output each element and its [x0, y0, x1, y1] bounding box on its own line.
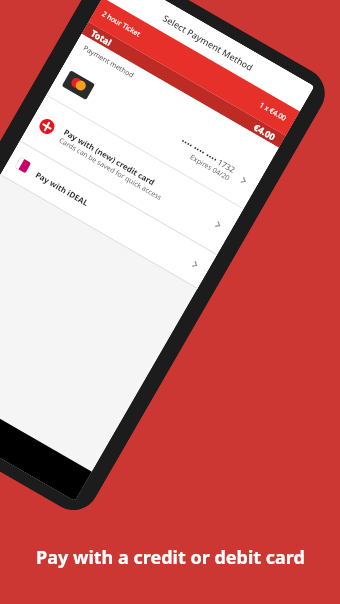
other: iDEAL — [15, 157, 31, 173]
other: Add card — [37, 116, 57, 137]
staticText: Select Payment Method — [161, 12, 256, 73]
staticText: Pay with (new) credit card — [62, 126, 157, 188]
staticText: Expires 04/20 — [188, 152, 232, 184]
staticText: €4.00 — [252, 121, 278, 143]
button[interactable]: iDEAL — [0, 141, 217, 288]
staticText: •••• •••• •••• 1732 — [179, 135, 237, 175]
button[interactable]: Select Payment Method — [102, 0, 314, 111]
button[interactable]: Add card — [20, 95, 243, 254]
staticText: Total — [89, 27, 115, 48]
staticText: Payment method — [81, 43, 136, 81]
staticText: 1 x €4.00 — [257, 100, 288, 124]
button[interactable]: •••• •••• •••• 1732 — [46, 53, 268, 208]
staticText: Pay with a credit or debit card — [36, 545, 305, 570]
staticText: 2 hour Ticket — [100, 9, 142, 39]
staticText: Pay with iDEAL — [34, 169, 91, 208]
staticText: Cards can be saved for quick access — [57, 136, 164, 203]
